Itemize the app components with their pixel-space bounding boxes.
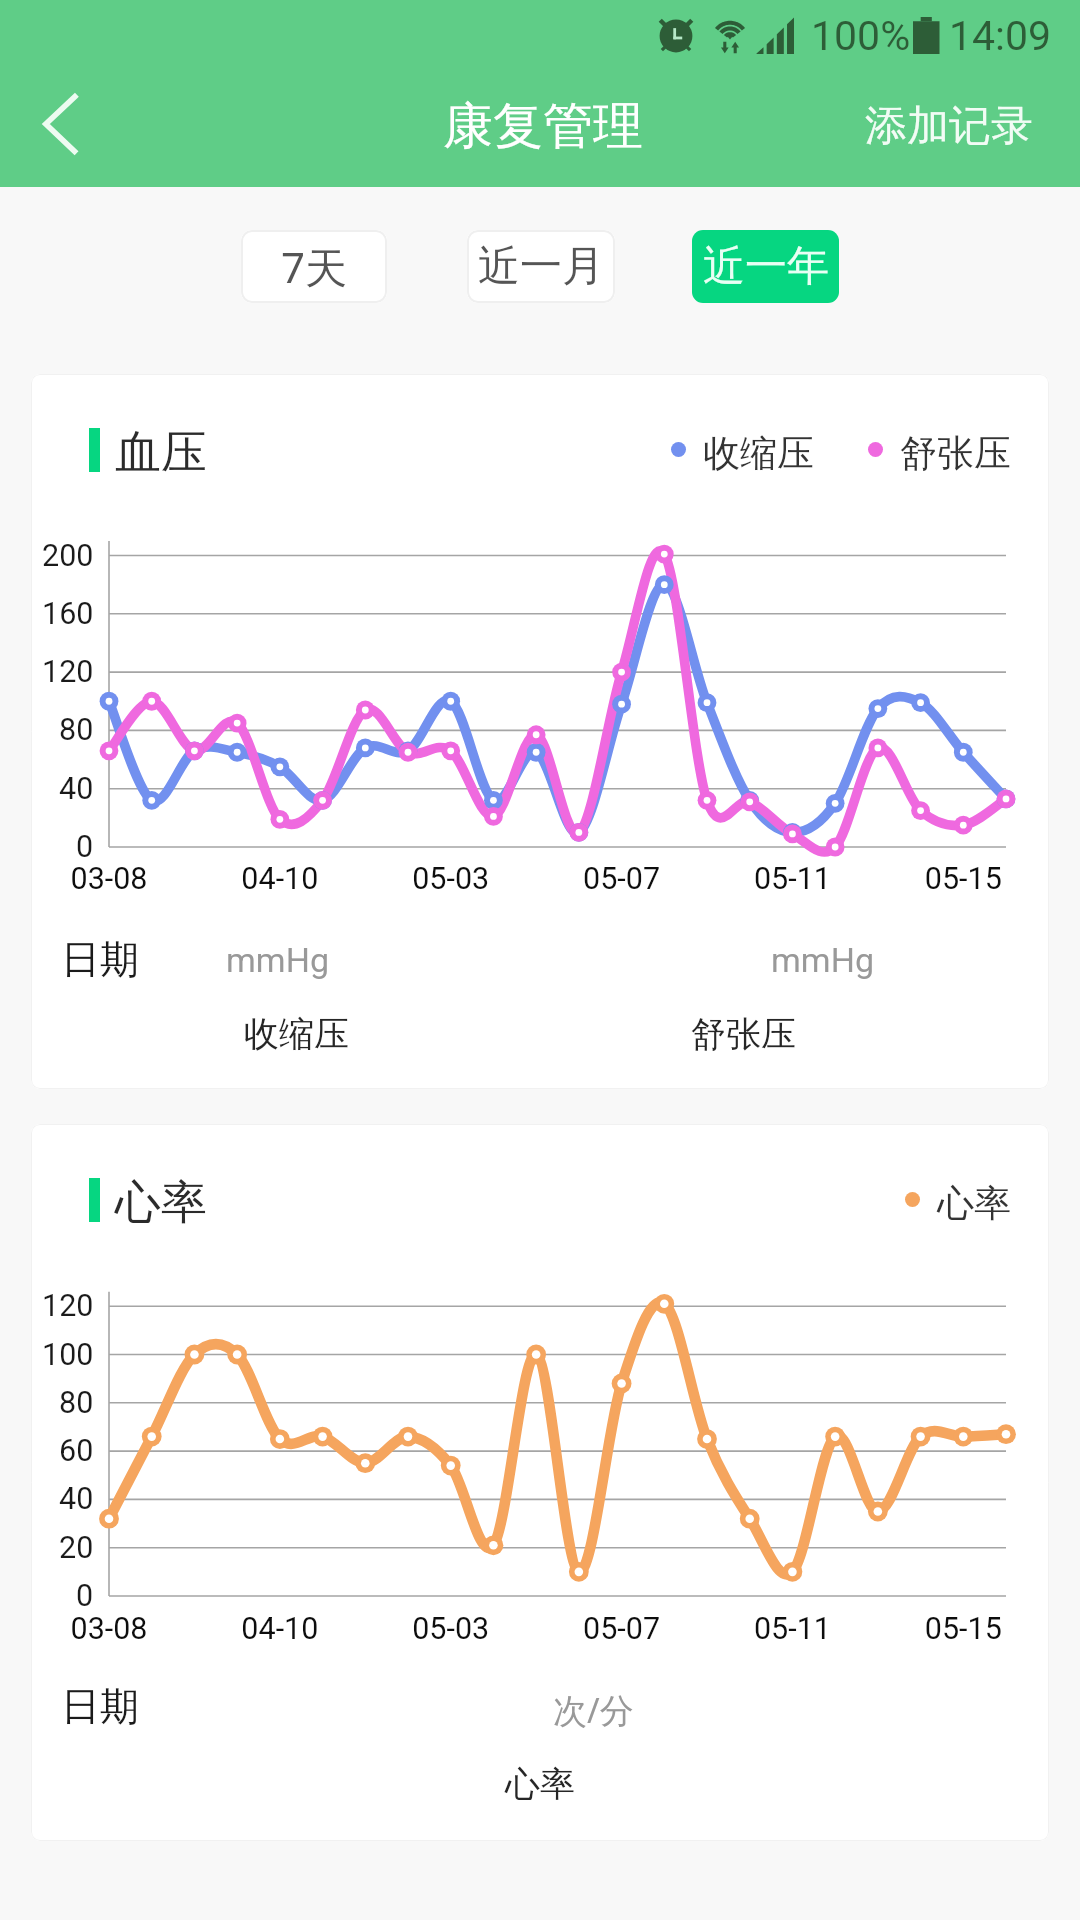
staticText: 收缩压 — [244, 1012, 349, 1056]
button[interactable]: 近一月 — [467, 230, 615, 303]
staticText: 血压 — [115, 424, 207, 482]
staticText: 日期 — [61, 935, 139, 984]
staticText: 近一年 — [703, 240, 829, 293]
staticText: 添加记录 — [865, 100, 1033, 153]
staticText: 舒张压 — [900, 430, 1011, 477]
staticText: 心率 — [505, 1762, 575, 1806]
staticText: 康复管理 — [443, 95, 643, 158]
button[interactable]: Back — [12, 77, 106, 171]
staticText: 舒张压 — [691, 1012, 796, 1056]
staticText: 次/分 — [553, 1687, 634, 1733]
staticText: 收缩压 — [703, 430, 814, 477]
staticText: 日期 — [61, 1682, 139, 1731]
staticText: 14:09 — [949, 12, 1052, 60]
button[interactable]: 近一年 — [692, 230, 839, 303]
button[interactable]: 7天 — [241, 230, 387, 303]
staticText: 7天 — [281, 238, 348, 295]
staticText: 心率 — [937, 1180, 1011, 1227]
staticText: 100% — [811, 12, 911, 60]
staticText: mmHg — [771, 940, 874, 980]
button[interactable]: 添加记录 — [849, 86, 1049, 167]
staticText: 近一月 — [478, 240, 604, 293]
staticText: mmHg — [226, 940, 329, 980]
staticText: 心率 — [115, 1174, 207, 1232]
